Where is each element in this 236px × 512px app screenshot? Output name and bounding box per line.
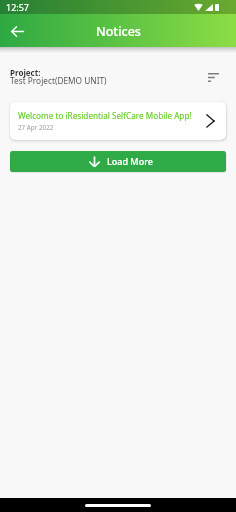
staticText: Welcome to iResidential SelfCare Mobile … xyxy=(18,110,192,121)
button[interactable]: Filter xyxy=(202,66,226,90)
button[interactable]: Open notice xyxy=(200,111,220,131)
staticText: 27 Apr 2022 xyxy=(18,123,54,132)
staticText: Notices xyxy=(96,23,141,40)
staticText: Load More xyxy=(107,155,153,167)
button[interactable]: Load More xyxy=(10,151,226,172)
staticText: Test Project(DEMO UNIT) xyxy=(10,75,107,86)
staticText: Project: xyxy=(10,67,41,78)
staticText: 12:57 xyxy=(6,1,30,13)
button[interactable]: Back xyxy=(0,14,33,47)
button[interactable]: Welcome to iResidential SelfCare Mobile … xyxy=(10,102,226,140)
